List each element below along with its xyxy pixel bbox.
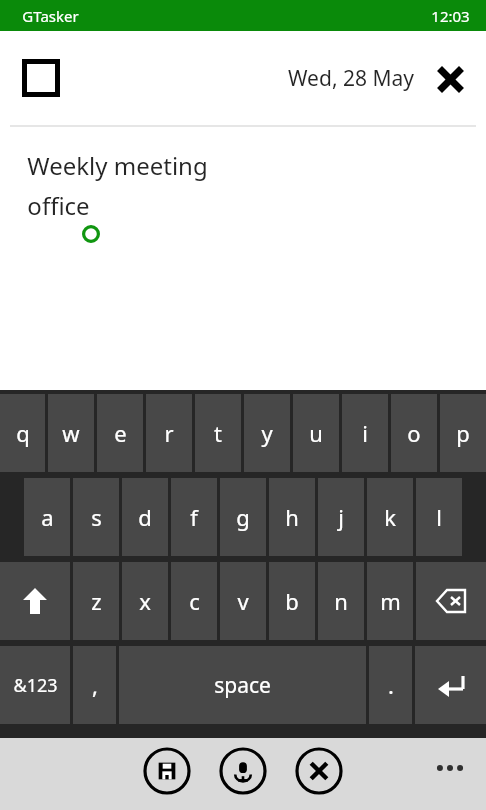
button[interactable]: a — [24, 478, 70, 556]
staticText: space — [214, 671, 271, 700]
button[interactable]: c — [171, 562, 217, 640]
staticText: GTasker — [22, 6, 79, 26]
staticText: c — [189, 586, 200, 616]
staticText: l — [436, 502, 442, 532]
staticText: Wed, 28 May — [288, 64, 414, 93]
staticText: . — [388, 670, 394, 700]
staticText: y — [261, 418, 273, 448]
staticText: &123 — [13, 673, 58, 698]
staticText: x — [139, 586, 151, 616]
button[interactable]: More options — [428, 746, 472, 790]
staticText: w — [62, 418, 80, 448]
button[interactable]: , — [73, 646, 116, 724]
staticText: office — [27, 189, 90, 222]
staticText: p — [456, 418, 470, 448]
button[interactable]: u — [293, 394, 339, 472]
button[interactable]: f — [171, 478, 217, 556]
button[interactable]: j — [318, 478, 364, 556]
button[interactable]: s — [73, 478, 119, 556]
staticText: s — [91, 502, 102, 532]
button[interactable]: r — [146, 394, 192, 472]
button[interactable]: . — [369, 646, 412, 724]
button[interactable]: v — [220, 562, 266, 640]
button[interactable]: Voice input — [219, 747, 267, 795]
button[interactable]: Enter — [415, 646, 486, 724]
staticText: h — [285, 502, 299, 532]
button[interactable]: Clear due date — [434, 63, 466, 95]
button[interactable]: d — [122, 478, 168, 556]
staticText: n — [334, 586, 348, 616]
button[interactable]: Shift — [0, 562, 70, 640]
staticText: k — [384, 502, 396, 532]
button[interactable]: b — [269, 562, 315, 640]
button[interactable]: x — [122, 562, 168, 640]
staticText: t — [214, 418, 222, 448]
button[interactable]: Backspace — [416, 562, 486, 640]
button[interactable]: Save — [143, 747, 191, 795]
button[interactable]: n — [318, 562, 364, 640]
button[interactable]: z — [73, 562, 119, 640]
staticText: q — [16, 418, 30, 448]
button[interactable]: g — [220, 478, 266, 556]
staticText: , — [92, 670, 98, 700]
staticText: u — [309, 418, 323, 448]
staticText: z — [91, 586, 102, 616]
staticText: d — [138, 502, 152, 532]
staticText: Weekly meeting — [27, 149, 208, 182]
button[interactable]: t — [195, 394, 241, 472]
button[interactable]: l — [416, 478, 462, 556]
staticText: m — [380, 586, 401, 616]
button[interactable]: y — [244, 394, 290, 472]
button[interactable]: space — [119, 646, 366, 724]
staticText: g — [236, 502, 250, 532]
staticText: a — [41, 502, 54, 532]
button[interactable]: i — [342, 394, 388, 472]
button[interactable]: Cancel — [295, 747, 343, 795]
button[interactable]: q — [0, 394, 45, 472]
staticText: e — [114, 418, 127, 448]
button[interactable]: &123 — [0, 646, 70, 724]
button[interactable]: m — [367, 562, 413, 640]
staticText: i — [362, 418, 368, 448]
button[interactable]: k — [367, 478, 413, 556]
staticText: o — [407, 418, 421, 448]
button[interactable]: Wed, 28 May — [284, 58, 418, 99]
staticText: f — [190, 502, 198, 532]
staticText: b — [285, 586, 299, 616]
staticText: j — [338, 502, 344, 532]
staticText: 12:03 — [431, 6, 470, 26]
button[interactable]: w — [48, 394, 94, 472]
button[interactable]: h — [269, 478, 315, 556]
button[interactable]: p — [440, 394, 486, 472]
button[interactable]: e — [97, 394, 143, 472]
staticText: r — [164, 418, 174, 448]
button[interactable]: o — [391, 394, 437, 472]
staticText: v — [237, 586, 249, 616]
button[interactable]: Mark complete — [22, 59, 60, 97]
